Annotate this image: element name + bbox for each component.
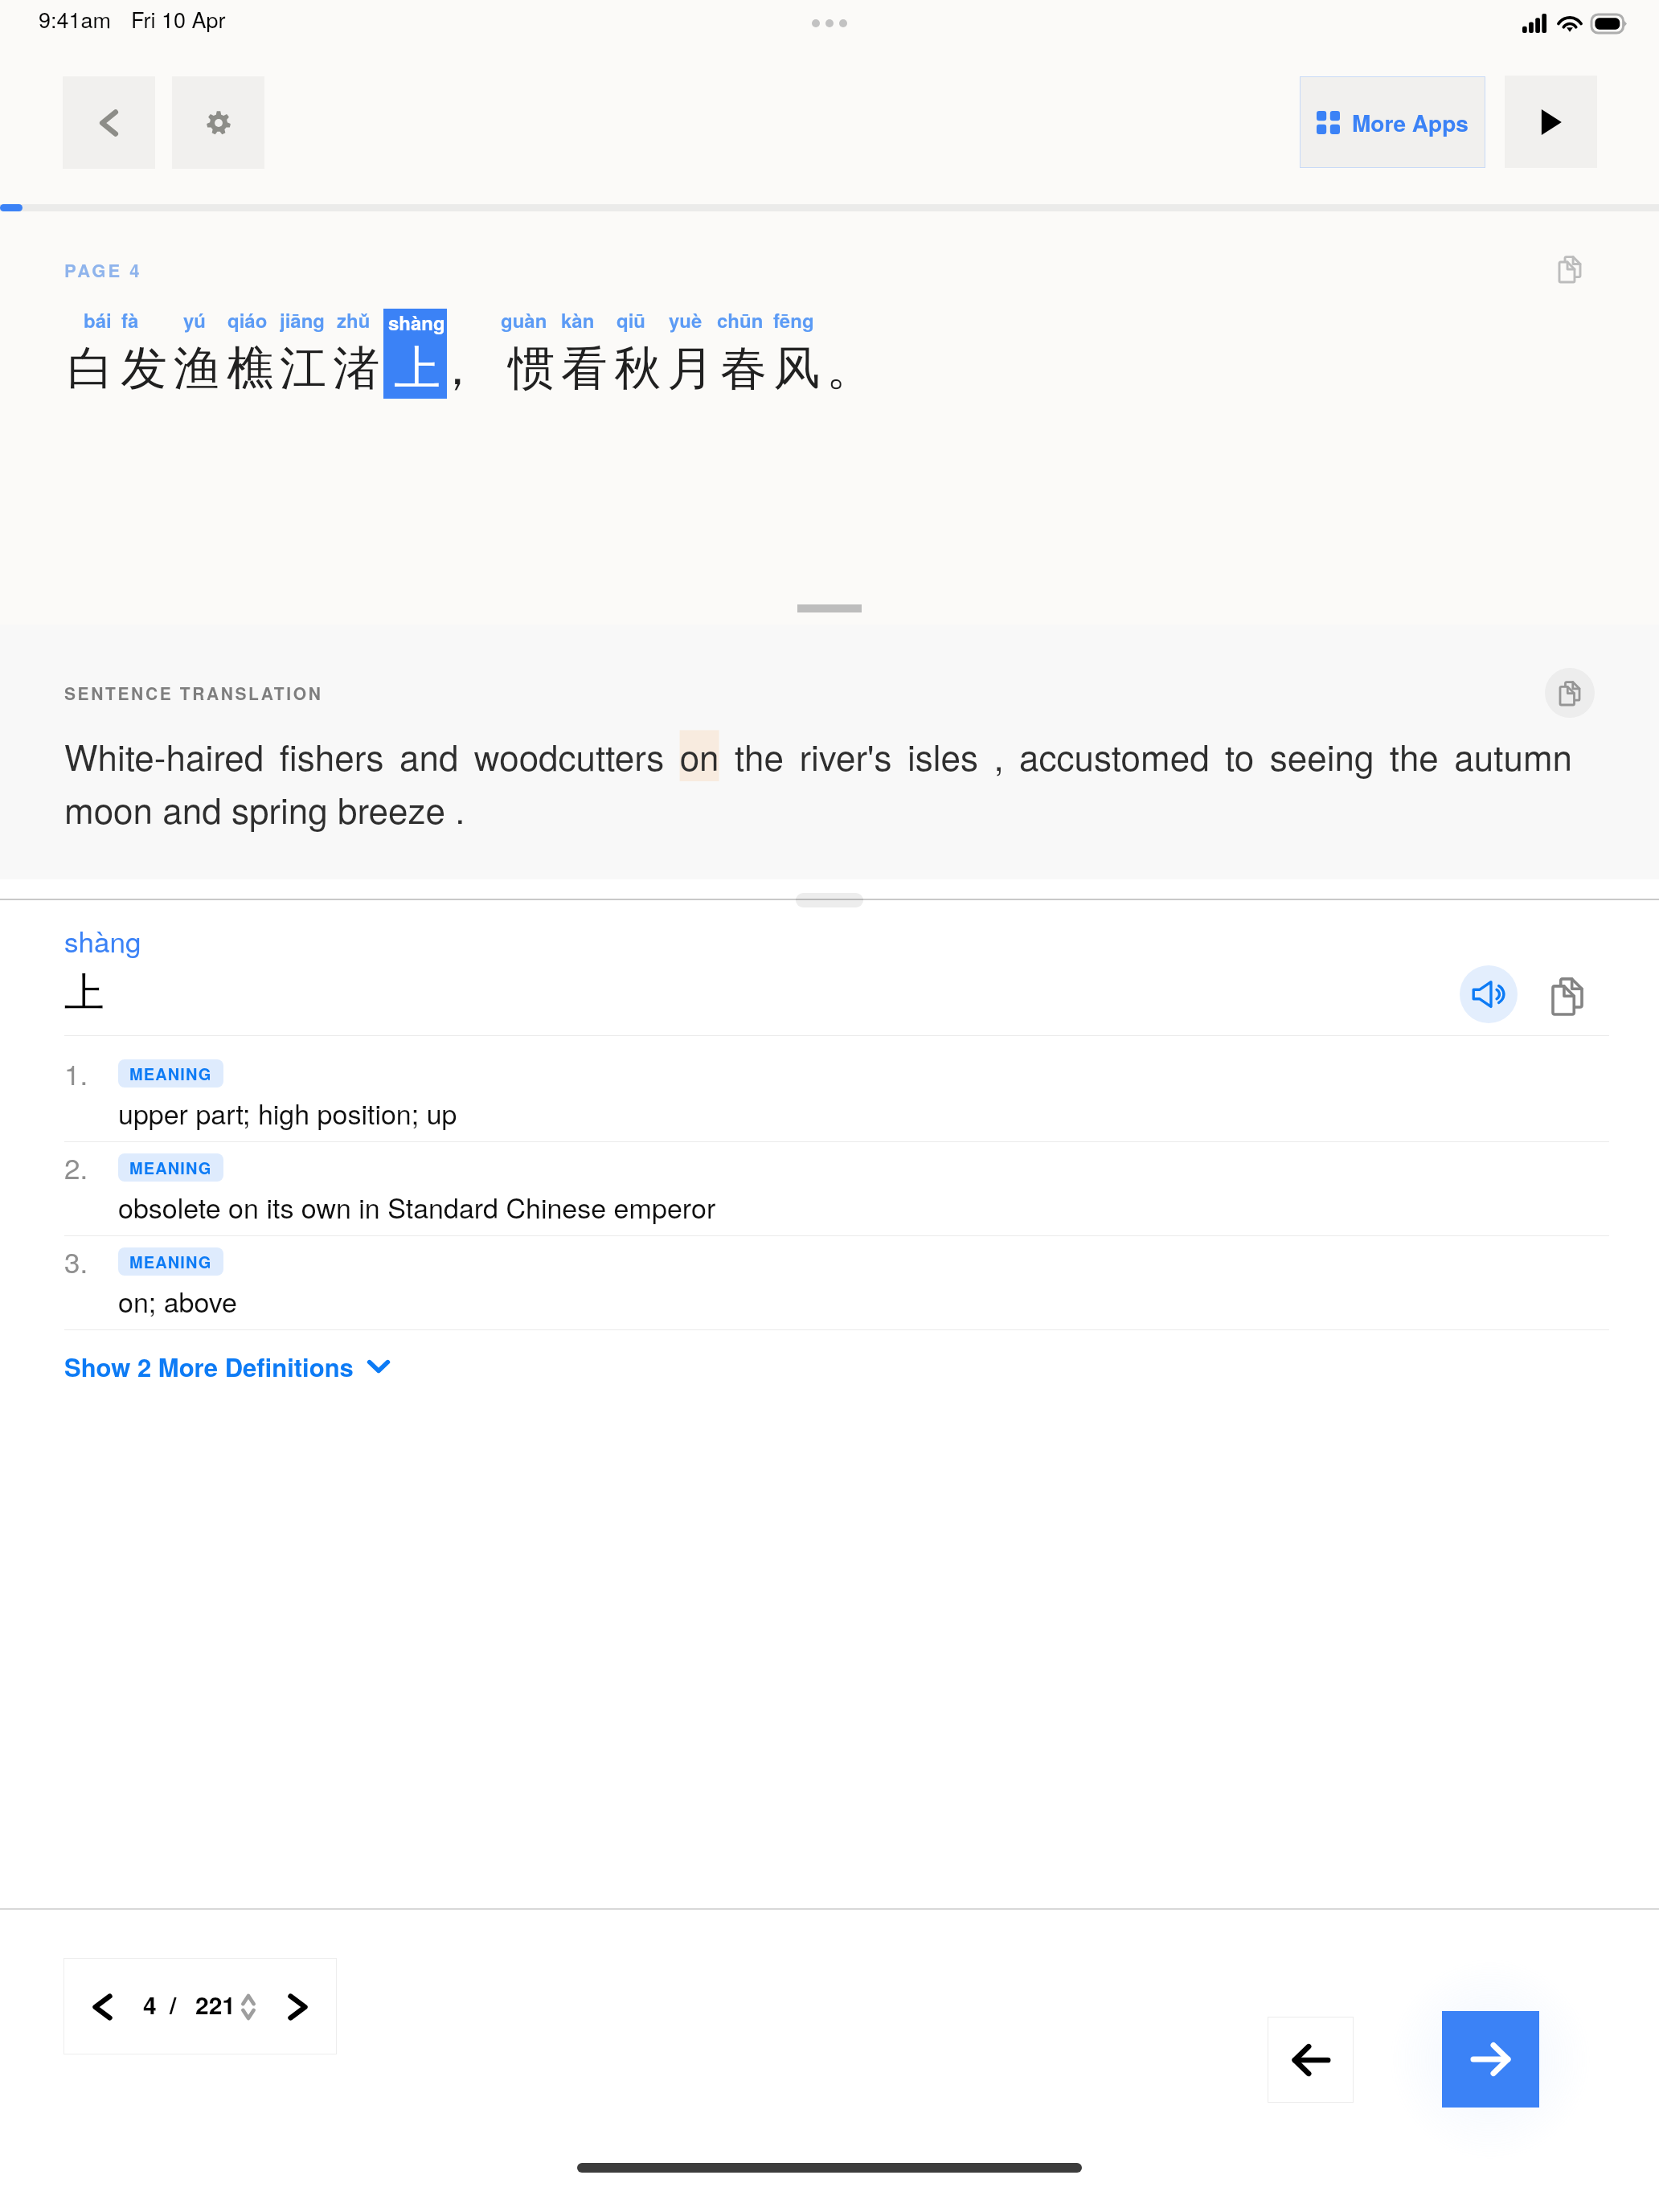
staticText: 上 [64, 968, 104, 1018]
button[interactable]: 上 [64, 968, 104, 1018]
button[interactable]: Previous [1268, 2017, 1354, 2103]
button[interactable]: guàn [501, 306, 547, 334]
staticText: 2. [64, 1147, 88, 1187]
staticText: obsolete on its own in Standard Chinese … [118, 1187, 716, 1227]
staticText: 惯看秋月春风。 [505, 339, 876, 398]
button[interactable]: 惯看秋月春风。 [505, 339, 876, 398]
staticText: on; above [118, 1281, 237, 1321]
button[interactable]: Play [1505, 76, 1597, 168]
staticText: MEANING [129, 1156, 212, 1179]
button[interactable]: Next [1442, 2011, 1539, 2108]
button[interactable]: Play pronunciation [1460, 965, 1518, 1023]
button[interactable]: fà [121, 306, 139, 334]
staticText: SENTENCE TRANSLATION [64, 681, 323, 705]
staticText: 1. [64, 1053, 88, 1093]
button[interactable]: Settings [172, 76, 264, 169]
button[interactable]: Back [63, 76, 155, 169]
staticText: / [170, 1987, 177, 2022]
staticText: shàng [388, 309, 445, 336]
button[interactable]: fēng [773, 306, 814, 334]
button[interactable]: kàn [561, 306, 595, 334]
button[interactable]: jiāng [280, 306, 326, 334]
staticText: MEANING [129, 1250, 212, 1273]
staticText: 4 [143, 1987, 157, 2022]
staticText: 221 [195, 1987, 236, 2022]
button[interactable]: Copy translation [1545, 668, 1595, 718]
button[interactable]: yú [183, 306, 207, 334]
staticText: PAGE 4 [64, 257, 142, 283]
button[interactable]: qiū [616, 306, 645, 334]
staticText: upper part; high position; up [118, 1093, 457, 1133]
staticText: 上 [394, 339, 440, 398]
button[interactable]: Copy sentence [1550, 250, 1590, 289]
button[interactable]: 4 [63, 1958, 337, 2054]
staticText: 3. [64, 1241, 88, 1281]
button[interactable]: yuè [669, 306, 703, 334]
button[interactable] [383, 309, 447, 399]
staticText: Show 2 More Definitions [64, 1349, 354, 1384]
staticText: shàng [64, 920, 141, 961]
button[interactable]: bái [84, 306, 112, 334]
staticText: Fri 10 Apr [131, 3, 226, 35]
staticText: 9:41am [39, 3, 112, 35]
staticText: More Apps [1352, 106, 1469, 138]
staticText: 白发渔樵江渚 [64, 339, 383, 398]
button[interactable]: chūn [717, 306, 764, 334]
button[interactable]: More Apps [1300, 76, 1485, 168]
staticText: White-haired fishers and woodcutters on … [64, 730, 1572, 834]
button[interactable]: 白发渔樵江渚 [64, 339, 383, 398]
button[interactable]: zhǔ [337, 306, 371, 334]
button[interactable]: qiáo [227, 306, 268, 334]
button[interactable]: Show 2 More Definitions [64, 1349, 389, 1384]
button[interactable]: Copy word [1545, 973, 1590, 1019]
staticText: ， [434, 339, 481, 398]
staticText: MEANING [129, 1062, 212, 1085]
